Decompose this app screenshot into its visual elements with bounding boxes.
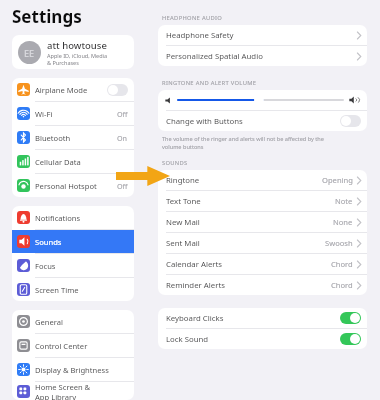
button[interactable]: Display & Brightness xyxy=(12,358,134,381)
staticText: Cellular Data xyxy=(35,157,81,167)
staticText: Ringtone xyxy=(166,175,200,186)
staticText: HEADPHONE AUDIO xyxy=(162,14,223,22)
staticText: Note xyxy=(335,196,353,206)
staticText: EE xyxy=(24,47,35,59)
button[interactable]: Reminder Alerts xyxy=(158,275,367,295)
staticText: Display & Brightness xyxy=(35,365,109,375)
staticText: Keyboard Clicks xyxy=(166,313,224,324)
button[interactable]: Screen Time xyxy=(12,278,134,301)
staticText: Chord xyxy=(331,259,353,269)
button[interactable]: Sounds xyxy=(12,230,134,253)
staticText: SOUNDS xyxy=(162,159,188,167)
button[interactable]: Headphone Safety xyxy=(158,25,367,45)
button[interactable]: Personalized Spatial Audio xyxy=(158,46,367,66)
button[interactable]: General xyxy=(12,310,134,333)
staticText: The volume of the ringer and alerts will… xyxy=(162,135,324,143)
staticText: Notifications xyxy=(35,213,81,223)
button[interactable]: Calendar Alerts xyxy=(158,254,367,274)
button[interactable]: Turn on xyxy=(340,115,361,127)
staticText: Screen Time xyxy=(35,285,79,295)
staticText: volume buttons xyxy=(162,143,204,151)
staticText: Sounds xyxy=(35,237,62,247)
button[interactable]: Text Tone xyxy=(158,191,367,211)
button[interactable]: Turn off xyxy=(340,333,361,345)
button[interactable]: Lock Sound xyxy=(158,329,367,349)
staticText: Headphone Safety xyxy=(166,30,234,41)
staticText: On xyxy=(117,133,128,143)
button[interactable]: Sent Mail xyxy=(158,233,367,253)
button[interactable]: Turn off xyxy=(340,312,361,324)
staticText: Change with Buttons xyxy=(166,116,243,127)
staticText: Reminder Alerts xyxy=(166,280,225,291)
button[interactable]: Wi-Fi xyxy=(12,102,134,125)
staticText: App Library xyxy=(35,392,77,400)
button[interactable]: Personal Hotspot xyxy=(12,174,134,197)
staticText: Bluetooth xyxy=(35,133,71,143)
button[interactable]: Control Center xyxy=(12,334,134,357)
staticText: Sent Mail xyxy=(166,238,200,249)
staticText: Personalized Spatial Audio xyxy=(166,51,263,62)
button[interactable]: Change with Buttons xyxy=(158,111,367,131)
staticText: Control Center xyxy=(35,341,88,351)
staticText: Opening xyxy=(322,175,353,185)
staticText: None xyxy=(333,217,353,227)
staticText: & Purchases xyxy=(47,59,79,66)
staticText: Focus xyxy=(35,261,56,271)
staticText: Airplane Mode xyxy=(35,85,88,95)
staticText: Lock Sound xyxy=(166,334,209,345)
button[interactable]: Keyboard Clicks xyxy=(158,308,367,328)
button[interactable]: Ringtone xyxy=(158,170,367,190)
staticText: Apple ID, iCloud, Media xyxy=(47,52,108,59)
staticText: Off xyxy=(117,109,128,119)
button[interactable]: Focus xyxy=(12,254,134,277)
staticText: Wi-Fi xyxy=(35,109,53,119)
button[interactable]: Home Screen & xyxy=(12,382,134,400)
staticText: New Mail xyxy=(166,217,200,228)
button[interactable]: Cellular Data xyxy=(12,150,134,173)
button[interactable]: New Mail xyxy=(158,212,367,232)
button[interactable]: Airplane Mode xyxy=(12,78,134,101)
staticText: Chord xyxy=(331,280,353,290)
staticText: Home Screen & xyxy=(35,382,91,392)
staticText: RINGTONE AND ALERT VOLUME xyxy=(162,79,257,87)
staticText: Off xyxy=(117,181,128,191)
button[interactable]: Notifications xyxy=(12,206,134,229)
staticText: Swoosh xyxy=(325,238,353,248)
staticText: Text Tone xyxy=(166,196,201,207)
staticText: Personal Hotspot xyxy=(35,181,97,191)
button[interactable]: Bluetooth xyxy=(12,126,134,149)
staticText: Calendar Alerts xyxy=(166,259,223,270)
button[interactable]: Turn on xyxy=(107,84,128,96)
button[interactable]: EE xyxy=(12,35,134,69)
staticText: att howtouse xyxy=(47,39,107,52)
staticText: General xyxy=(35,317,63,327)
staticText: Settings xyxy=(12,5,82,28)
